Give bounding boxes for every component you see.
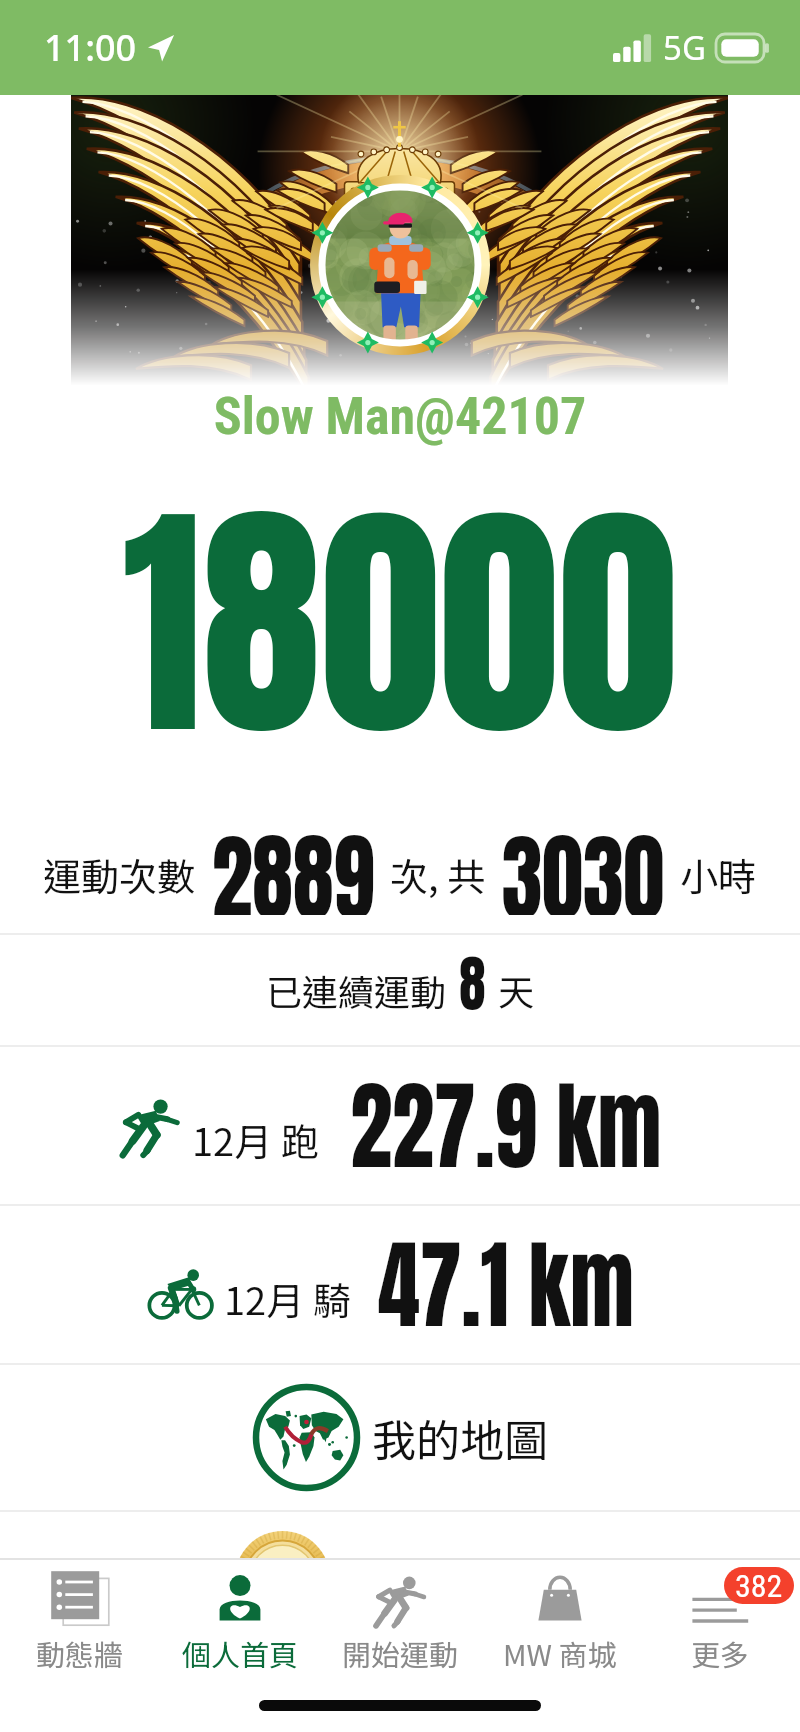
staticText: 2889: [212, 805, 374, 915]
button[interactable]: 開始運動: [320, 1560, 480, 1678]
button[interactable]: 個人首頁: [160, 1560, 320, 1678]
staticText: 3030: [502, 805, 664, 915]
staticText: 小時: [680, 847, 757, 902]
button[interactable]: 我的地圖: [0, 1365, 800, 1510]
button[interactable]: MW 商城: [480, 1560, 640, 1678]
button[interactable]: 12月 跑: [0, 1047, 800, 1204]
button[interactable]: Slow Man@42107: [0, 386, 800, 447]
staticText: 12月 跑: [192, 1112, 319, 1167]
staticText: 更多: [691, 1632, 750, 1674]
staticText: 開始運動: [342, 1632, 459, 1674]
button[interactable]: 18000: [0, 435, 800, 811]
button[interactable]: 12月 騎: [0, 1206, 800, 1363]
staticText: 382: [735, 1567, 783, 1604]
staticText: 12月 騎: [224, 1271, 351, 1326]
staticText: 我的地圖: [372, 1406, 548, 1470]
staticText: 個人首頁: [182, 1632, 299, 1674]
button[interactable]: 運動次數: [0, 805, 800, 915]
staticText: 已連續運動: [266, 964, 447, 1016]
staticText: 天: [498, 964, 535, 1016]
button[interactable]: 動態牆: [0, 1560, 160, 1678]
staticText: 動態牆: [36, 1632, 124, 1674]
button[interactable]: Profile banner: [71, 95, 728, 386]
staticText: 運動次數: [43, 847, 196, 902]
staticText: 8: [459, 937, 486, 1030]
staticText: 5G: [663, 25, 706, 70]
staticText: 227.9 km: [350, 1053, 662, 1199]
staticText: 次, 共: [390, 847, 486, 902]
staticText: 47.1 km: [378, 1212, 634, 1358]
staticText: MW 商城: [503, 1632, 617, 1674]
staticText: 11:00: [44, 23, 137, 72]
button[interactable]: 382: [640, 1560, 800, 1678]
